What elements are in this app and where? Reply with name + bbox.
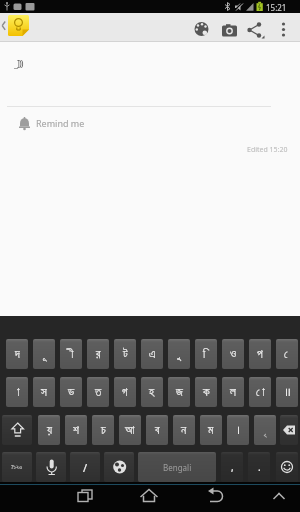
button[interactable] xyxy=(266,482,294,512)
staticText: শ xyxy=(73,425,79,436)
staticText: , xyxy=(231,460,234,474)
staticText: হ xyxy=(149,387,155,398)
staticText: গ xyxy=(122,387,128,398)
button[interactable]: / xyxy=(70,452,100,482)
button[interactable]: ড xyxy=(60,377,82,407)
button[interactable]: য় xyxy=(38,415,60,445)
button[interactable]: ৃ xyxy=(254,415,276,445)
button[interactable]: । xyxy=(227,415,249,445)
button[interactable]: ো xyxy=(249,377,271,407)
button[interactable]: ন xyxy=(173,415,195,445)
button[interactable] xyxy=(36,452,66,482)
staticText: Edited 15:20 xyxy=(247,145,288,155)
staticText: ৃ xyxy=(263,425,267,436)
staticText: . xyxy=(258,460,261,474)
staticText: _])) xyxy=(14,57,23,69)
staticText: ক xyxy=(203,387,210,398)
button[interactable]: প xyxy=(249,339,271,369)
staticText: ন xyxy=(181,425,187,436)
button[interactable]: আ xyxy=(119,415,141,445)
button[interactable]: ূ xyxy=(33,339,55,369)
staticText: প xyxy=(257,349,263,360)
staticText: জ xyxy=(176,387,183,398)
button[interactable]: স xyxy=(33,377,55,407)
staticText: ূ xyxy=(42,349,46,360)
staticText: এ xyxy=(149,349,156,360)
staticText: আ xyxy=(125,425,135,436)
button[interactable] xyxy=(243,17,266,40)
button[interactable]: ী xyxy=(60,339,82,369)
button[interactable]: এ xyxy=(141,339,163,369)
staticText: Remind me xyxy=(36,117,85,129)
button[interactable]: ম xyxy=(200,415,222,445)
button[interactable] xyxy=(0,13,32,42)
button[interactable]: Remind me xyxy=(0,110,300,136)
staticText: ব xyxy=(155,425,160,436)
button[interactable]: ?১২৩ xyxy=(2,452,32,482)
staticText: / xyxy=(83,460,88,475)
button[interactable] xyxy=(2,415,32,445)
button[interactable] xyxy=(272,17,295,40)
button[interactable]: ি xyxy=(195,339,217,369)
staticText: ট xyxy=(123,349,128,360)
button[interactable]: ত xyxy=(87,377,109,407)
button[interactable] xyxy=(276,452,298,482)
button[interactable] xyxy=(135,482,163,512)
button[interactable]: ব xyxy=(146,415,168,445)
button[interactable]: শ xyxy=(65,415,87,445)
staticText: । xyxy=(236,422,241,438)
staticText: ॥ xyxy=(284,384,291,400)
staticText: ে xyxy=(284,349,291,360)
button[interactable]: র xyxy=(87,339,109,369)
button[interactable] xyxy=(218,17,241,40)
button[interactable]: ট xyxy=(114,339,136,369)
staticText: ?১২৩ xyxy=(11,463,23,471)
staticText: য় xyxy=(47,425,52,436)
button[interactable]: গ xyxy=(114,377,136,407)
staticText: ো xyxy=(256,387,265,398)
button[interactable] xyxy=(204,482,232,512)
button[interactable]: ও xyxy=(222,339,244,369)
button[interactable]: , xyxy=(221,452,243,482)
button[interactable]: ॥ xyxy=(276,377,298,407)
button[interactable] xyxy=(190,17,213,40)
staticText: ি xyxy=(203,349,209,360)
staticText: া xyxy=(14,387,20,398)
button[interactable]: দ xyxy=(6,339,28,369)
staticText: ত xyxy=(95,387,102,398)
button[interactable]: জ xyxy=(168,377,190,407)
staticText: Bengali xyxy=(163,462,192,473)
staticText: স xyxy=(41,387,47,398)
button[interactable] xyxy=(71,482,99,512)
button[interactable]: Bengali xyxy=(138,452,216,482)
staticText: চ xyxy=(101,425,106,436)
button[interactable] xyxy=(280,415,298,445)
button[interactable]: হ xyxy=(141,377,163,407)
button[interactable]: ল xyxy=(222,377,244,407)
staticText: ল xyxy=(230,387,236,398)
staticText: 15:21 xyxy=(266,2,287,13)
staticText: ু xyxy=(177,349,181,360)
staticText: ী xyxy=(68,349,74,360)
button[interactable]: ক xyxy=(195,377,217,407)
staticText: ম xyxy=(208,425,214,436)
button[interactable]: ে xyxy=(276,339,298,369)
button[interactable]: চ xyxy=(92,415,114,445)
button[interactable] xyxy=(104,452,134,482)
staticText: র xyxy=(96,349,101,360)
staticText: ড xyxy=(68,387,75,398)
button[interactable]: া xyxy=(6,377,28,407)
staticText: দ xyxy=(15,349,20,360)
button[interactable]: . xyxy=(248,452,270,482)
staticText: ও xyxy=(230,349,237,360)
button[interactable]: ু xyxy=(168,339,190,369)
